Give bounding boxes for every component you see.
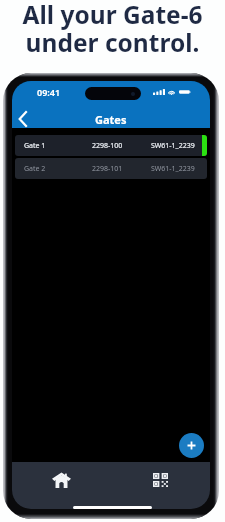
button[interactable]: Home bbox=[12, 462, 111, 498]
staticText: Gate 1 bbox=[24, 141, 46, 151]
staticText: Gates bbox=[95, 112, 127, 127]
staticText: 2298-101 bbox=[92, 164, 123, 174]
button[interactable]: Gate 2 bbox=[15, 158, 207, 179]
staticText: All your Gate-6 under control. bbox=[0, 0, 225, 59]
staticText: SW61-1_2239 bbox=[151, 164, 195, 174]
button[interactable]: Back bbox=[12, 108, 34, 130]
staticText: Gate 2 bbox=[24, 164, 46, 174]
staticText: 2298-100 bbox=[92, 141, 123, 151]
button[interactable]: Add bbox=[179, 433, 204, 458]
staticText: SW61-1_2239 bbox=[151, 141, 195, 151]
button[interactable]: Gate 1 bbox=[15, 135, 207, 156]
button[interactable]: Scan QR code bbox=[111, 462, 210, 498]
staticText: 09:41 bbox=[37, 86, 61, 98]
